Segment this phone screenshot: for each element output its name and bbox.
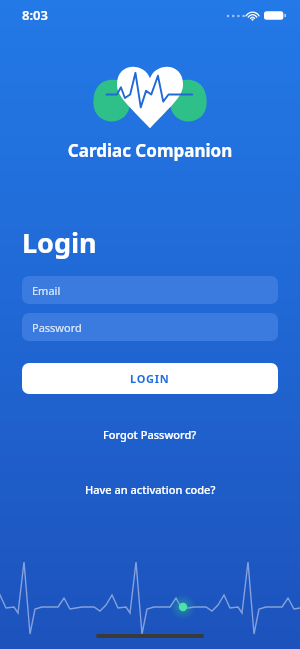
button[interactable]: Email — [22, 276, 278, 304]
staticText: 8:03 — [22, 6, 48, 24]
staticText: Forgot Password? — [103, 427, 197, 442]
staticText: LOGIN — [130, 371, 170, 386]
button[interactable]: Have an activation code? — [73, 477, 228, 502]
staticText: Email — [32, 283, 61, 298]
button[interactable]: LOGIN — [22, 363, 278, 394]
button[interactable]: Forgot Password? — [91, 422, 209, 447]
staticText: Login — [22, 224, 97, 261]
staticText: Cardiac Companion — [0, 139, 300, 162]
button[interactable]: Password — [22, 313, 278, 341]
staticText: Have an activation code? — [85, 482, 216, 497]
staticText: Password — [32, 320, 82, 335]
